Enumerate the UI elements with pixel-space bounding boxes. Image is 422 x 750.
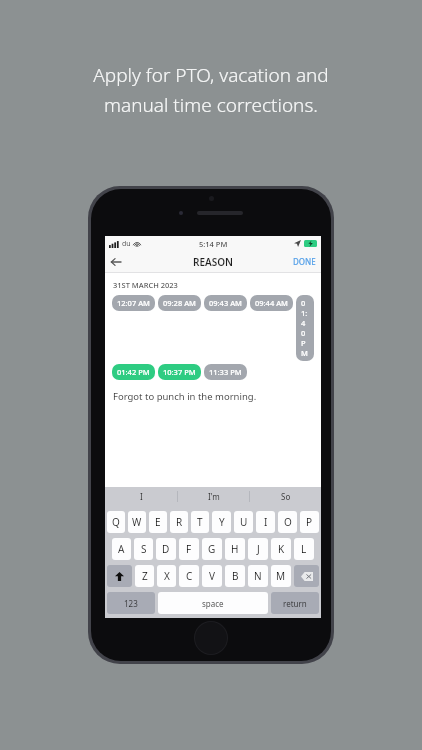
button[interactable]: M — [271, 565, 291, 587]
button[interactable]: 09:44 AM — [250, 295, 293, 311]
button[interactable]: P — [300, 511, 319, 533]
staticText: D — [162, 542, 170, 556]
button[interactable]: So — [250, 487, 321, 506]
staticText: So — [281, 491, 291, 502]
staticText: E — [155, 515, 161, 529]
staticText: R — [176, 515, 183, 529]
button[interactable]: 12:07 AM — [112, 295, 155, 311]
button[interactable]: I — [105, 487, 177, 506]
staticText: 123 — [124, 598, 138, 609]
staticText: C — [186, 569, 193, 583]
staticText: 09:44 AM — [255, 298, 288, 308]
button[interactable]: G — [202, 538, 222, 560]
button[interactable]: B — [225, 565, 245, 587]
button[interactable]: N — [248, 565, 268, 587]
staticText: Q — [112, 515, 120, 529]
button[interactable]: Q — [107, 511, 125, 533]
button[interactable]: L — [294, 538, 314, 560]
staticText: Z — [142, 569, 148, 583]
staticText: 09:28 AM — [163, 298, 196, 308]
staticText: 31ST MARCH 2023 — [113, 280, 178, 290]
staticText: Forgot to punch in the morning. — [113, 390, 257, 403]
staticText: space — [202, 598, 224, 609]
staticText: L — [301, 542, 307, 556]
staticText: REASON — [193, 255, 234, 269]
button[interactable]: Delete — [294, 565, 319, 587]
button[interactable]: 11:33 PM — [204, 364, 247, 380]
staticText: O — [284, 515, 292, 529]
staticText: N — [254, 569, 262, 583]
staticText: H — [231, 542, 239, 556]
staticText: return — [283, 598, 307, 609]
staticText: T — [197, 515, 203, 529]
staticText: F — [186, 542, 192, 556]
button[interactable]: Z — [135, 565, 154, 587]
button[interactable]: E — [149, 511, 167, 533]
button[interactable]: return — [271, 592, 319, 614]
staticText: V — [209, 569, 215, 583]
button[interactable]: W — [128, 511, 146, 533]
button[interactable]: I — [256, 511, 275, 533]
button[interactable]: 10:37 PM — [158, 364, 201, 380]
button[interactable]: 01:40 PM — [296, 295, 314, 361]
button[interactable]: I'm — [178, 487, 249, 506]
button[interactable]: A — [112, 538, 131, 560]
staticText: I — [140, 491, 143, 502]
button[interactable]: S — [134, 538, 153, 560]
button[interactable]: X — [157, 565, 176, 587]
staticText: K — [278, 542, 285, 556]
staticText: 5:14 PM — [199, 239, 228, 249]
staticText: B — [232, 569, 239, 583]
button[interactable]: Back — [105, 251, 127, 272]
button[interactable]: R — [170, 511, 188, 533]
staticText: P — [306, 515, 313, 529]
button[interactable]: space — [158, 592, 268, 614]
button[interactable]: V — [202, 565, 222, 587]
staticText: DONE — [293, 256, 316, 267]
staticText: W — [132, 515, 142, 529]
button[interactable]: Y — [212, 511, 231, 533]
staticText: I'm — [208, 491, 220, 502]
button[interactable]: K — [271, 538, 291, 560]
button[interactable]: C — [179, 565, 199, 587]
staticText: Y — [219, 515, 225, 529]
staticText: M — [276, 569, 286, 583]
button[interactable]: 09:43 AM — [204, 295, 247, 311]
staticText: I — [264, 515, 268, 529]
button[interactable]: DONE — [288, 252, 321, 271]
button[interactable]: U — [234, 511, 253, 533]
button[interactable]: Shift — [107, 565, 132, 587]
button[interactable]: O — [278, 511, 297, 533]
staticText: G — [208, 542, 216, 556]
button[interactable]: J — [248, 538, 268, 560]
button[interactable]: H — [225, 538, 245, 560]
staticText: 09:43 AM — [209, 298, 242, 308]
staticText: manual time corrections. — [104, 92, 318, 118]
button[interactable]: 01:42 PM — [112, 364, 155, 380]
staticText: 12:07 AM — [117, 298, 150, 308]
staticText: A — [118, 542, 125, 556]
button[interactable]: F — [179, 538, 199, 560]
staticText: du — [122, 239, 131, 249]
button[interactable]: 123 — [107, 592, 155, 614]
staticText: 01:42 PM — [117, 367, 150, 377]
button[interactable]: T — [191, 511, 209, 533]
staticText: 11:33 PM — [209, 367, 242, 377]
staticText: 01:40 PM — [301, 298, 309, 358]
staticText: 10:37 PM — [163, 367, 196, 377]
staticText: X — [164, 569, 170, 583]
button[interactable]: D — [156, 538, 176, 560]
staticText: Apply for PTO, vacation and — [93, 62, 329, 88]
staticText: S — [141, 542, 147, 556]
staticText: J — [257, 542, 260, 556]
button[interactable]: 09:28 AM — [158, 295, 201, 311]
staticText: U — [240, 515, 248, 529]
